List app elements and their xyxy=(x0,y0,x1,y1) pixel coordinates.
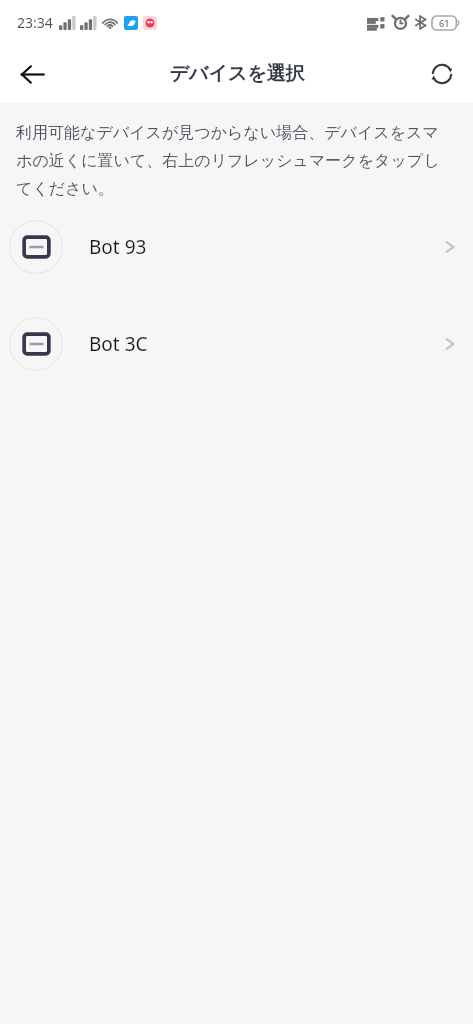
button[interactable]: Bot 3C xyxy=(0,317,473,371)
staticText: 61 xyxy=(439,17,450,29)
staticText: 23:34 xyxy=(17,13,53,32)
button[interactable]: Refresh xyxy=(418,50,466,98)
staticText: 利用可能なデバイスが見つからない場合、デバイスをスマホの近くに置いて、右上のリフ… xyxy=(16,123,451,199)
staticText: デバイスを選択 xyxy=(169,62,305,86)
staticText: Bot 93 xyxy=(89,234,147,260)
button[interactable]: Bot 93 xyxy=(0,220,473,274)
button[interactable]: Back xyxy=(8,50,56,98)
staticText: Bot 3C xyxy=(89,331,148,357)
